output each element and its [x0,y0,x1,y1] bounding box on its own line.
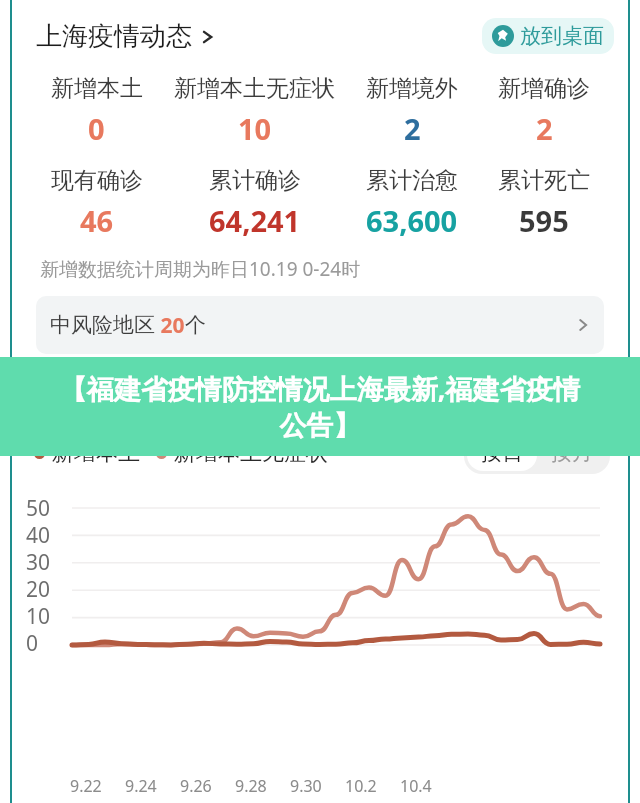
staticText: 10 [26,602,51,629]
staticText: 63,600 [366,201,458,240]
staticText: 新增本土无症状 [174,439,328,467]
staticText: 2 [404,109,421,148]
staticText: 疫情趋势 [130,377,218,405]
staticText: 累计死亡 [498,166,590,195]
staticText: 0 [26,629,39,656]
staticText: 64,241 [209,201,301,240]
staticText: 10.4 [400,775,432,797]
staticText: 20 [155,311,185,340]
staticText: 9.24 [125,775,157,797]
staticText: 【福建省疫情防控情况上海最新,福建省疫情公告】 [54,370,586,443]
staticText: 20 [26,575,51,602]
staticText: 9.30 [290,775,322,797]
staticText: 新增本土无症状 [174,74,335,103]
staticText: 0 [88,109,105,148]
staticText: 新增本土 [52,439,140,467]
staticText: 30 [26,548,51,575]
staticText: 累计治愈 [366,166,458,195]
staticText: 上海疫情动态 [36,20,192,53]
button[interactable]: 疫情趋势 [36,368,312,414]
staticText: 放到桌面 [520,23,604,49]
staticText: 新增本土 [51,74,143,103]
button[interactable]: 放到桌面 [482,18,614,54]
button[interactable]: 按月 [537,435,607,471]
staticText: 595 [519,201,569,240]
staticText: 9.28 [235,775,267,797]
staticText: 各地区新增详情 [389,377,543,405]
button[interactable]: 各地区新增详情 [328,368,604,414]
staticText: 现有确诊 [51,166,143,195]
staticText: 46 [80,201,114,240]
button[interactable]: 上海疫情动态 [36,20,216,53]
staticText: 个 [185,312,206,338]
staticText: 10 [238,109,272,148]
other: 放到桌面 [492,25,514,47]
staticText: 新增境外 [366,74,458,103]
staticText: 新增数据统计周期为昨日10.19 0-24时 [40,256,361,282]
staticText: 中风险地区 [50,312,155,338]
staticText: 40 [26,521,51,548]
staticText: 9.26 [180,775,212,797]
button[interactable]: 中风险地区 [36,296,604,354]
staticText: 按月 [551,440,593,466]
staticText: 9.22 [70,775,102,797]
staticText: 累计确诊 [209,166,301,195]
staticText: 50 [26,494,51,521]
staticText: 2 [536,109,553,148]
staticText: 10.2 [345,775,377,797]
button[interactable]: 按日 [467,435,537,471]
staticText: 新增确诊 [498,74,590,103]
staticText: 按日 [481,440,523,466]
